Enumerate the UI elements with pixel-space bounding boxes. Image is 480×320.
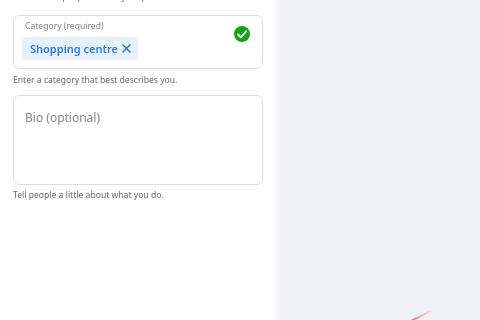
- other: Remove Shopping centre: [123, 45, 130, 52]
- staticText: Shopping centre: [30, 41, 118, 56]
- staticText: Enter a category that best describes you…: [13, 74, 178, 86]
- staticText: Tell people a little about what you do.: [13, 189, 164, 201]
- other: Valid: [234, 26, 250, 42]
- button[interactable]: Shopping centre: [22, 37, 138, 60]
- button[interactable]: Bio (optional): [13, 95, 263, 185]
- staticText: Bio (optional): [25, 109, 101, 125]
- button[interactable]: Category (required): [13, 15, 263, 69]
- staticText: This is what people see on your profile.: [13, 0, 171, 3]
- staticText: Category (required): [25, 20, 104, 32]
